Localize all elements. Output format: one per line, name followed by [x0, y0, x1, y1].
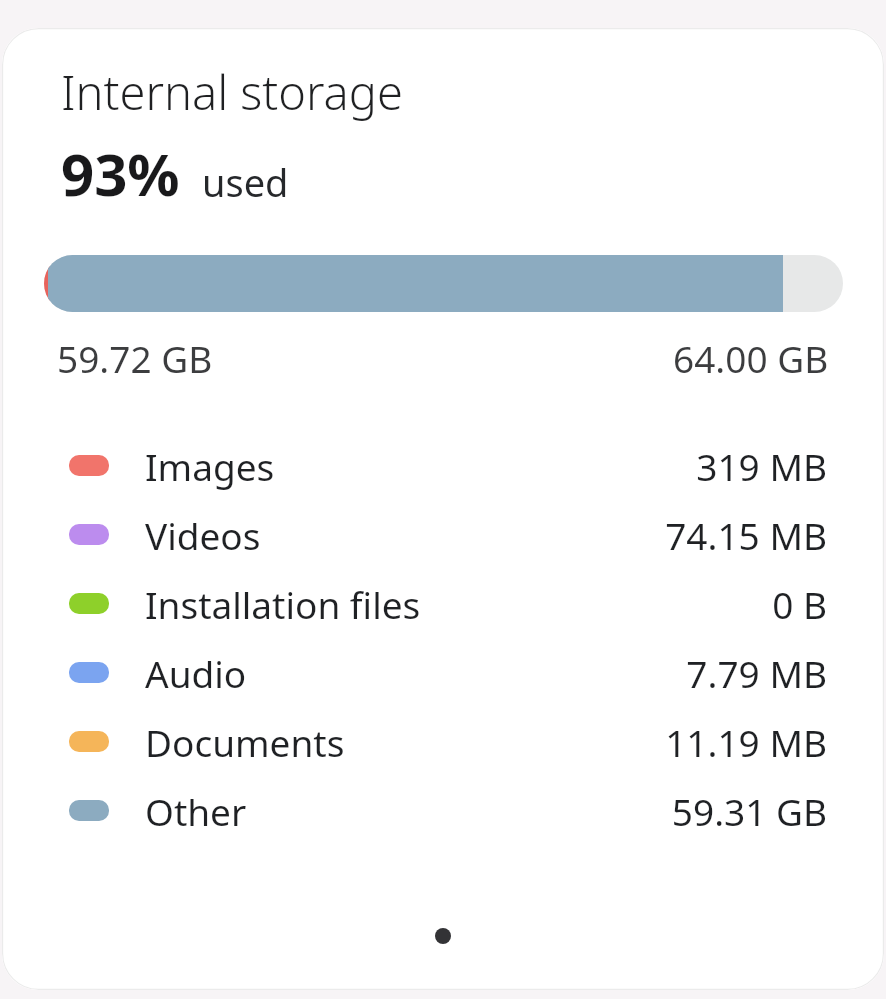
- staticText: used: [202, 156, 289, 208]
- staticText: 0 B: [772, 579, 827, 629]
- staticText: 59.31 GB: [671, 786, 827, 836]
- staticText: 11.19 MB: [665, 717, 827, 767]
- staticText: 74.15 MB: [665, 510, 827, 560]
- button[interactable]: Audio: [2, 638, 884, 707]
- button[interactable]: Installation files: [2, 569, 884, 638]
- button[interactable]: Images: [2, 431, 884, 500]
- staticText: Documents: [145, 717, 345, 767]
- staticText: 7.79 MB: [686, 648, 827, 698]
- button[interactable]: Videos: [2, 500, 884, 569]
- staticText: Audio: [145, 648, 247, 698]
- staticText: 93%: [61, 134, 180, 213]
- staticText: Images: [145, 441, 275, 491]
- button[interactable]: Documents: [2, 707, 884, 776]
- staticText: Internal storage: [61, 60, 403, 124]
- button[interactable]: Other: [2, 776, 884, 845]
- staticText: Installation files: [145, 579, 421, 629]
- button[interactable]: Internal storage: [2, 28, 884, 990]
- staticText: 59.72 GB: [57, 333, 213, 383]
- staticText: Other: [145, 786, 247, 836]
- staticText: Videos: [145, 510, 261, 560]
- staticText: 64.00 GB: [673, 333, 829, 383]
- staticText: 319 MB: [696, 441, 827, 491]
- other: Page 1 of 1: [435, 928, 451, 944]
